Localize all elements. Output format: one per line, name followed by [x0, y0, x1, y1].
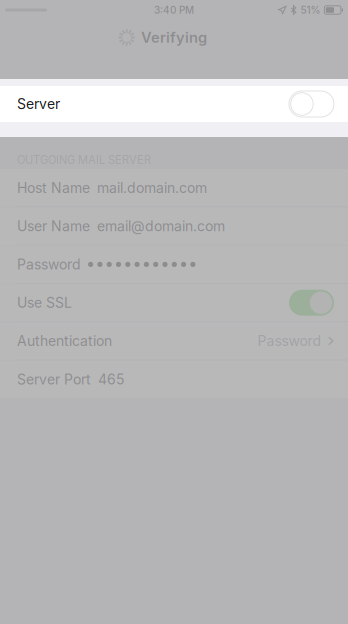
staticText: email@domain.com	[97, 218, 225, 234]
staticText: Password	[258, 332, 322, 349]
staticText: Verifying	[141, 29, 207, 46]
staticText: Password	[17, 256, 81, 273]
staticText: Host Name	[17, 179, 90, 196]
staticText: Server	[17, 95, 60, 112]
button[interactable]: Authentication	[0, 322, 348, 360]
staticText: 3:40 PM	[154, 4, 194, 16]
staticText: OUTGOING MAIL SERVER	[17, 153, 151, 167]
staticText: User Name	[17, 218, 90, 234]
staticText: Use SSL	[17, 294, 72, 311]
staticText: Authentication	[17, 332, 112, 349]
button[interactable]: Server	[0, 86, 348, 122]
staticText: 465	[98, 371, 125, 388]
staticText: 51%	[300, 4, 320, 16]
staticText: Server Port	[17, 371, 91, 388]
button[interactable]: Use SSL	[0, 284, 348, 321]
staticText: mail.domain.com	[97, 179, 207, 196]
